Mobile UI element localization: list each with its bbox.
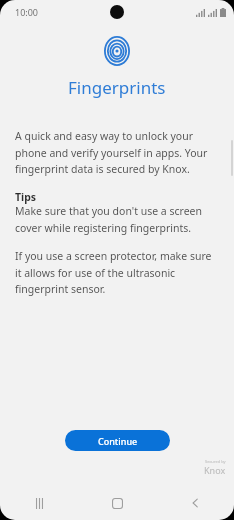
button[interactable]: Recent apps [0,486,78,520]
staticText: If you use a screen protector, make sure… [15,249,219,296]
button[interactable]: Continue [65,430,170,451]
staticText: Knox [204,464,226,476]
staticText: Make sure that you don't use a screen co… [15,204,219,235]
button[interactable]: Home [78,486,156,520]
staticText: Fingerprints [68,76,166,99]
staticText: Secured by [205,459,226,464]
button[interactable]: Back [156,486,234,520]
staticText: 10:00 [15,6,39,18]
staticText: Continue [98,435,138,447]
staticText: Tips [15,190,37,204]
staticText: A quick and easy way to unlock your phon… [15,129,219,176]
